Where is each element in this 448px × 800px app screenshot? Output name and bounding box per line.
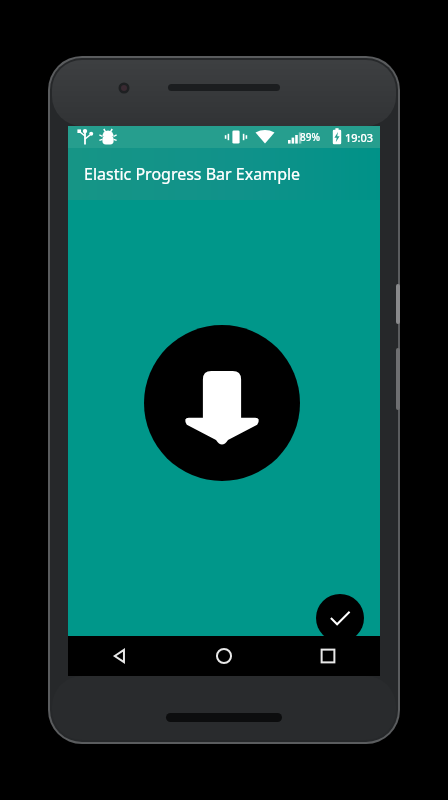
button[interactable]: Done: [316, 594, 364, 642]
button[interactable]: Download progress: [144, 325, 300, 481]
button[interactable]: Home: [172, 636, 276, 676]
button[interactable]: Back: [68, 636, 172, 676]
staticText: Elastic Progress Bar Example: [84, 163, 301, 185]
staticText: 19:03: [345, 130, 374, 145]
button[interactable]: Recent apps: [276, 636, 380, 676]
staticText: 89%: [300, 130, 320, 144]
